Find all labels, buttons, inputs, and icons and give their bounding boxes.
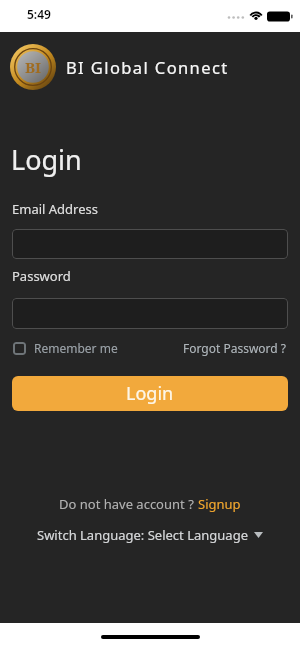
button[interactable] [12,229,288,259]
button[interactable]: Login [12,376,288,411]
staticText: Password [12,267,71,285]
staticText: Email Address [12,200,98,218]
staticText: Signup [198,495,241,513]
button[interactable]: Do not have account ? [59,495,241,513]
button[interactable]: Forgot Password ? [183,340,287,356]
staticText: Switch Language: Select Language [37,526,248,544]
staticText: Login [126,381,174,406]
button[interactable] [12,298,288,329]
staticText: Do not have account ? [59,495,198,513]
staticText: BI [25,57,42,77]
button[interactable]: Switch Language: Select Language [0,526,300,544]
staticText: BI Global Connect [66,56,229,78]
staticText: Remember me [34,340,118,356]
staticText: Login [11,141,82,178]
button[interactable]: Remember me [13,340,118,356]
staticText: 5:49 [27,6,51,22]
